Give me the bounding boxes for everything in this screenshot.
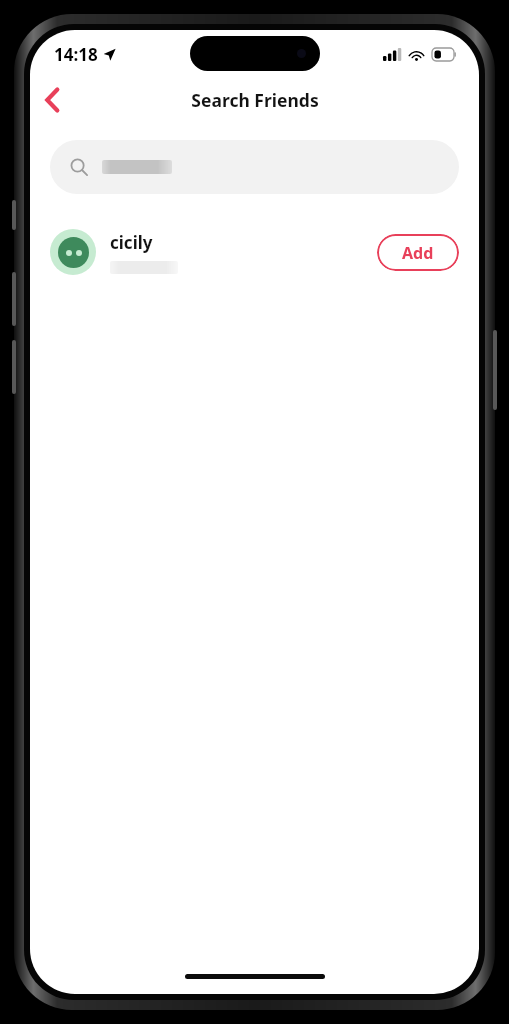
staticText: 14:18 — [54, 43, 98, 66]
button[interactable] — [50, 140, 459, 194]
button[interactable]: Add — [377, 234, 459, 271]
staticText: Add — [402, 242, 434, 264]
staticText: Search Friends — [191, 88, 319, 112]
button[interactable]: Back — [30, 78, 74, 122]
staticText: cicily — [110, 231, 153, 254]
button[interactable]: cicily — [30, 221, 479, 283]
